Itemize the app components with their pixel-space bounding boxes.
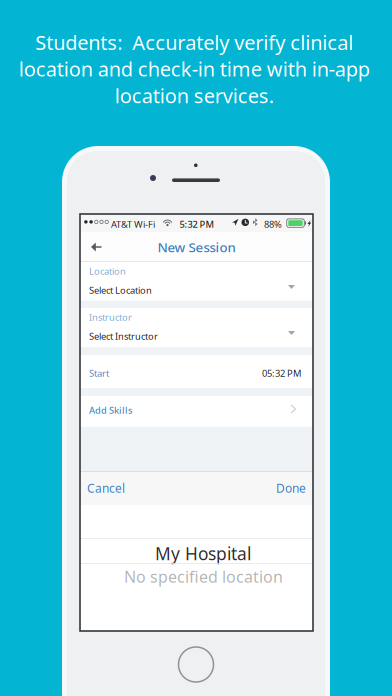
button[interactable]: Done <box>269 471 313 505</box>
button[interactable]: Add Skills <box>80 396 313 427</box>
staticText: Select Instructor <box>89 330 158 342</box>
staticText: No specified location <box>124 566 283 587</box>
button[interactable]: Cancel <box>80 471 132 505</box>
staticText: Location <box>89 265 126 277</box>
button[interactable]: Instructor <box>80 308 313 347</box>
staticText: Select Location <box>89 284 152 296</box>
staticText: 5:32 PM <box>179 218 214 230</box>
staticText: 05:32 PM <box>262 367 301 379</box>
button[interactable]: Location <box>80 262 313 301</box>
staticText: Start <box>89 367 109 379</box>
staticText: Instructor <box>89 311 132 323</box>
staticText: 88% <box>264 218 282 230</box>
staticText: Students: Accurately verify clinical loc… <box>18 29 369 109</box>
staticText: Cancel <box>87 480 125 496</box>
staticText: New Session <box>157 238 235 256</box>
button[interactable]: Start <box>80 355 313 388</box>
button[interactable]: Back <box>80 232 110 261</box>
staticText: Add Skills <box>89 404 133 416</box>
staticText: My Hospital <box>155 542 251 565</box>
staticText: Done <box>276 480 306 496</box>
staticText: AT&T Wi-Fi <box>111 218 155 230</box>
